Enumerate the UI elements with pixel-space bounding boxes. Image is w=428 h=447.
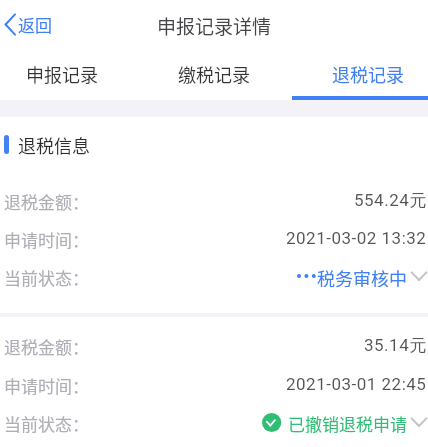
staticText: 35.14元 xyxy=(364,335,427,356)
staticText: 申报记录详情 xyxy=(0,12,428,40)
staticText: 554.24元 xyxy=(354,190,427,211)
staticText: 申报记录 xyxy=(26,61,98,87)
staticText: 2021-03-01 22:45 xyxy=(286,374,427,394)
button[interactable]: 返回 xyxy=(0,11,58,37)
staticText: 申请时间： xyxy=(4,373,89,395)
other: Expand details xyxy=(410,267,428,285)
staticText: 退税金额： xyxy=(4,189,89,211)
staticText: 缴税记录 xyxy=(178,61,250,87)
button[interactable]: 当前状态： xyxy=(0,265,428,287)
staticText: 税务审核中 xyxy=(317,265,407,287)
staticText: 当前状态： xyxy=(4,265,89,287)
staticText: 2021-03-02 13:32 xyxy=(286,228,427,248)
other: Expand details xyxy=(410,413,428,431)
staticText: 已撤销退税申请 xyxy=(288,411,407,433)
staticText: 退税记录 xyxy=(332,61,404,87)
staticText: 当前状态： xyxy=(4,411,89,433)
staticText: 返回 xyxy=(18,12,52,37)
staticText: 退税信息 xyxy=(18,132,90,156)
staticText: 退税金额： xyxy=(4,334,89,356)
button[interactable]: 当前状态： xyxy=(0,411,428,433)
button[interactable]: 退税记录 xyxy=(292,53,428,95)
staticText: 申请时间： xyxy=(4,227,89,249)
button[interactable]: 缴税记录 xyxy=(138,53,290,95)
button[interactable]: 申报记录 xyxy=(0,53,138,95)
